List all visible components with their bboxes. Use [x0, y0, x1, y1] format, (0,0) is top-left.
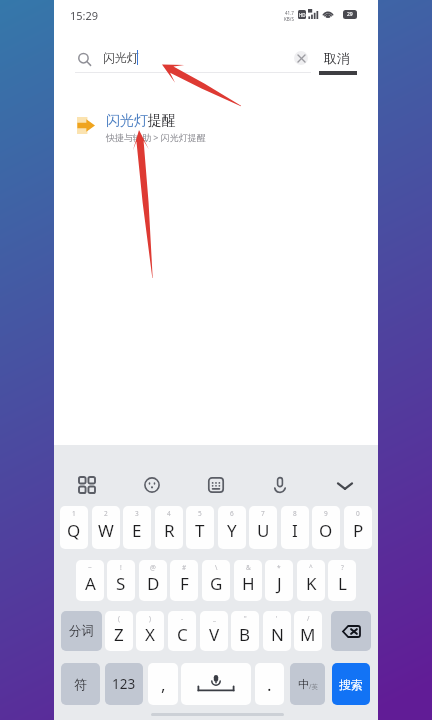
staticText: ^	[309, 563, 313, 572]
staticText: C	[177, 623, 188, 646]
button[interactable]: ^	[297, 560, 325, 601]
staticText: R	[164, 519, 175, 542]
staticText: U	[257, 519, 270, 542]
button[interactable]: Keyboard layout	[200, 469, 232, 501]
button[interactable]: 0	[344, 506, 372, 549]
staticText: 6	[230, 509, 234, 518]
staticText: X	[145, 623, 155, 646]
staticText: ?	[341, 563, 344, 572]
button[interactable]: Keyboard panels	[71, 469, 103, 501]
staticText: ,	[161, 673, 166, 696]
button[interactable]: 123	[105, 663, 143, 705]
button[interactable]: Backspace	[331, 611, 371, 651]
staticText: 15:29	[70, 8, 99, 23]
staticText: 3	[135, 509, 139, 518]
button[interactable]: 搜索	[332, 663, 370, 705]
button[interactable]: 5	[186, 506, 214, 549]
staticText: 4	[167, 509, 171, 518]
button[interactable]: .	[255, 663, 284, 705]
button[interactable]: Search	[71, 46, 97, 72]
staticText: -	[181, 614, 184, 623]
button[interactable]: Clear text	[294, 51, 308, 65]
button[interactable]: "	[231, 611, 259, 651]
button[interactable]: -	[168, 611, 196, 651]
staticText: 1	[72, 509, 76, 518]
staticText: M	[300, 623, 316, 646]
staticText: 闪光灯	[103, 50, 139, 65]
staticText: )	[149, 614, 151, 623]
staticText: 8	[293, 509, 297, 518]
staticText: @	[150, 563, 156, 572]
staticText: O	[319, 519, 333, 542]
button[interactable]: ,	[148, 663, 178, 705]
staticText: Y	[227, 519, 237, 542]
button[interactable]: 1	[60, 506, 88, 549]
button[interactable]: Space, voice input	[181, 663, 251, 705]
button[interactable]: @	[139, 560, 167, 601]
button[interactable]: 9	[312, 506, 340, 549]
button[interactable]: 符	[61, 663, 100, 705]
button[interactable]: 7	[249, 506, 277, 549]
staticText: 提醒	[148, 112, 176, 130]
button[interactable]: Hide keyboard	[329, 470, 361, 502]
button[interactable]: *	[265, 560, 293, 601]
staticText: HD	[299, 12, 306, 18]
staticText: 41.7	[285, 10, 294, 16]
staticText: 符	[74, 676, 87, 692]
button[interactable]: 取消	[316, 44, 374, 80]
staticText: T	[195, 519, 205, 542]
button[interactable]: (	[105, 611, 133, 651]
staticText: 闪光灯	[106, 112, 148, 130]
button[interactable]: 分词	[61, 611, 102, 651]
staticText: 2	[104, 509, 108, 518]
staticText: N	[271, 623, 284, 646]
staticText: V	[209, 623, 220, 646]
staticText: J	[277, 572, 282, 595]
button[interactable]: ~	[76, 560, 104, 601]
button[interactable]: 4	[155, 506, 183, 549]
staticText: Q	[67, 519, 81, 542]
button[interactable]: !	[107, 560, 135, 601]
staticText: P	[353, 519, 364, 542]
staticText: .	[267, 673, 272, 696]
button[interactable]: )	[136, 611, 164, 651]
button[interactable]: 6	[218, 506, 246, 549]
staticText: 分词	[69, 623, 94, 639]
staticText: D	[147, 572, 160, 595]
button[interactable]: 3	[123, 506, 151, 549]
staticText: ~	[88, 563, 92, 572]
staticText: KB/S	[284, 16, 294, 22]
button[interactable]: 2	[92, 506, 120, 549]
staticText: Z	[114, 623, 124, 646]
staticText: S	[116, 572, 126, 595]
staticText: /英	[309, 682, 318, 691]
staticText: 0	[356, 509, 360, 518]
staticText: H	[242, 572, 255, 595]
button[interactable]: Emoji	[136, 469, 168, 501]
staticText: \	[215, 563, 218, 572]
button[interactable]: _	[200, 611, 228, 651]
button[interactable]: 8	[281, 506, 309, 549]
button[interactable]: '	[263, 611, 291, 651]
staticText: 中	[298, 677, 309, 691]
staticText: 7	[261, 509, 265, 518]
staticText: K	[306, 572, 317, 595]
button[interactable]: \	[202, 560, 230, 601]
staticText: 29	[347, 11, 353, 18]
button[interactable]: 中	[290, 663, 325, 705]
staticText: W	[98, 519, 114, 542]
staticText: (	[118, 614, 120, 623]
button[interactable]: #	[170, 560, 198, 601]
button[interactable]: /	[294, 611, 322, 651]
staticText: 123	[112, 675, 136, 693]
button[interactable]: ?	[328, 560, 356, 601]
staticText: &	[246, 563, 251, 572]
staticText: *	[277, 563, 281, 572]
button[interactable]: &	[234, 560, 262, 601]
staticText: 取消	[324, 50, 350, 66]
staticText: "	[244, 614, 247, 623]
staticText: !	[120, 563, 122, 572]
staticText: F	[180, 572, 189, 595]
button[interactable]: Voice input	[264, 469, 296, 501]
button[interactable]: 闪光灯	[54, 104, 378, 152]
